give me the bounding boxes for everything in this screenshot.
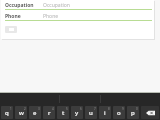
button[interactable]: o	[113, 106, 125, 119]
staticText: 1	[10, 107, 12, 111]
staticText: 0	[136, 107, 138, 111]
staticText: 4	[52, 107, 54, 111]
staticText: Phone	[43, 13, 59, 20]
staticText: p	[131, 109, 135, 117]
staticText: w	[19, 109, 24, 117]
staticText: 7	[94, 107, 96, 111]
staticText: 9	[122, 107, 124, 111]
button[interactable]: r	[43, 106, 55, 119]
button[interactable]: Occupation	[1, 1, 154, 9]
button[interactable]: q	[1, 106, 13, 119]
staticText: y	[75, 109, 79, 117]
button[interactable]: e	[29, 106, 41, 119]
button[interactable]: u	[85, 106, 97, 119]
staticText: o	[117, 109, 121, 117]
staticText: u	[89, 109, 93, 117]
staticText: 8	[108, 107, 110, 111]
staticText: 2	[24, 107, 26, 111]
button[interactable]: w	[15, 106, 27, 119]
staticText: t	[62, 109, 65, 117]
staticText: 3	[38, 107, 40, 111]
staticText: Phone	[5, 13, 21, 20]
button[interactable]: Add	[5, 26, 17, 33]
button[interactable]: p	[127, 106, 139, 119]
staticText: e	[33, 109, 37, 117]
staticText: 5	[66, 107, 68, 111]
staticText: q	[5, 109, 9, 117]
button[interactable]: Backspace	[141, 106, 159, 119]
staticText: i	[104, 109, 106, 117]
staticText: Occupation	[5, 2, 34, 9]
button[interactable]: i	[99, 106, 111, 119]
button[interactable]: y	[71, 106, 83, 119]
staticText: r	[48, 109, 51, 117]
button[interactable]: t	[57, 106, 69, 119]
staticText: Occupation	[43, 2, 70, 9]
staticText: 6	[80, 107, 82, 111]
button[interactable]: Phone	[1, 12, 154, 20]
